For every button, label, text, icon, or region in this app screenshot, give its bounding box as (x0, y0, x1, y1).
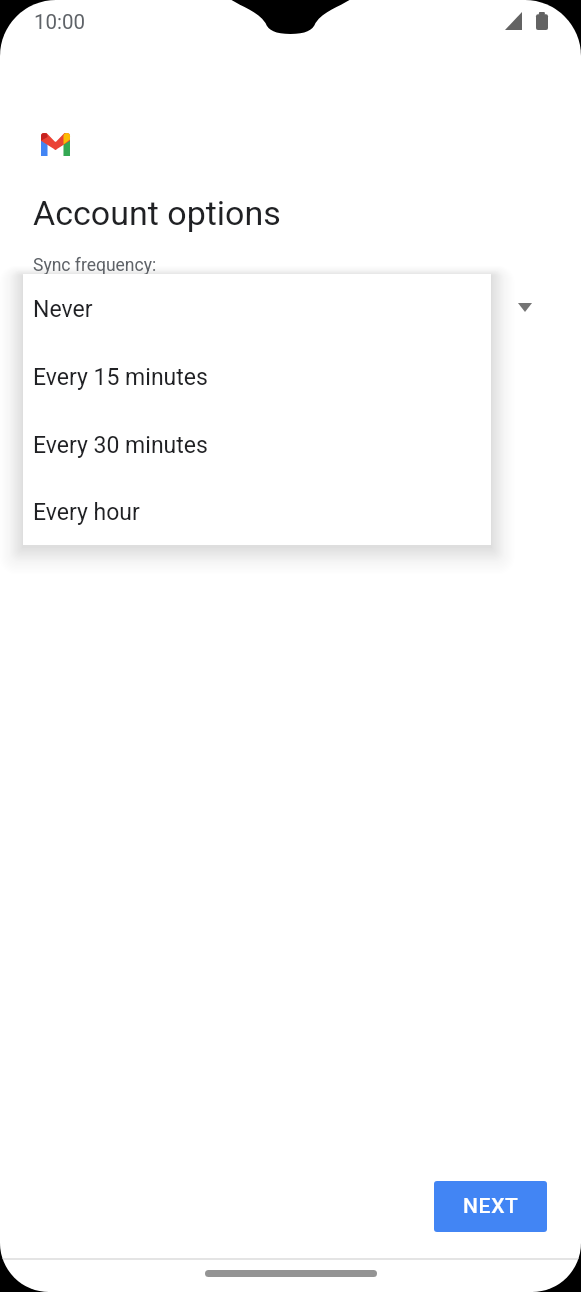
staticText: Every hour (33, 499, 140, 526)
staticText: 10:00 (34, 10, 86, 34)
staticText: Sync frequency: (33, 255, 157, 276)
staticText: Every 30 minutes (33, 432, 208, 459)
button[interactable]: Never (23, 274, 491, 342)
button[interactable]: Every 30 minutes (23, 410, 491, 478)
button[interactable]: Every 15 minutes (23, 342, 491, 410)
staticText: NEXT (463, 1194, 519, 1219)
button[interactable]: Every hour (23, 478, 491, 545)
staticText: Every 15 minutes (33, 364, 208, 391)
button[interactable]: Open sync frequency dropdown (505, 288, 544, 327)
staticText: Account options (33, 193, 281, 233)
button[interactable]: NEXT (434, 1181, 547, 1232)
staticText: Never (33, 296, 93, 323)
